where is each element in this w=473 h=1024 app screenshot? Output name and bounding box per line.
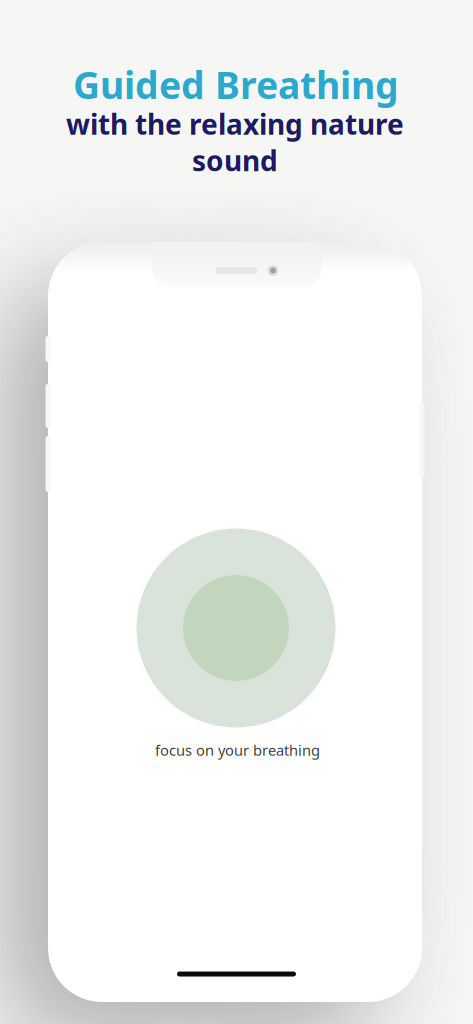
staticText: Guided Breathing: [73, 60, 399, 109]
button[interactable]: Start breathing session: [136, 528, 335, 727]
staticText: focus on your breathing: [155, 740, 320, 760]
staticText: with the relaxing nature: [66, 105, 404, 143]
staticText: sound: [192, 142, 278, 179]
